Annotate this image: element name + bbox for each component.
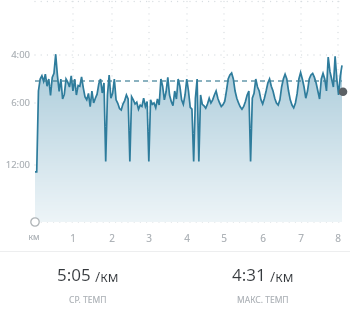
staticText: СР. ТЕМП <box>69 294 107 306</box>
staticText: 4 <box>174 231 200 245</box>
button[interactable]: Pace over distance chart <box>0 0 350 251</box>
staticText: 5 <box>211 231 237 245</box>
button[interactable]: 5:05 <box>0 252 175 314</box>
other: Pace over distance chart <box>0 0 350 251</box>
staticText: 8 <box>325 231 350 245</box>
staticText: 12:00 <box>1 158 30 171</box>
staticText: км <box>21 231 47 243</box>
staticText: /км <box>270 267 294 286</box>
staticText: 5:05 <box>57 263 91 286</box>
staticText: 6:00 <box>1 96 30 109</box>
staticText: 4:00 <box>1 48 30 61</box>
staticText: /км <box>95 267 119 286</box>
staticText: 1 <box>60 231 86 245</box>
staticText: 4:31 <box>232 263 266 286</box>
staticText: 3 <box>136 231 162 245</box>
staticText: МАКС. ТЕМП <box>237 294 289 306</box>
staticText: 2 <box>99 231 125 245</box>
button[interactable]: 4:31 <box>175 252 350 314</box>
staticText: 6 <box>250 231 276 245</box>
staticText: 7 <box>288 231 314 245</box>
